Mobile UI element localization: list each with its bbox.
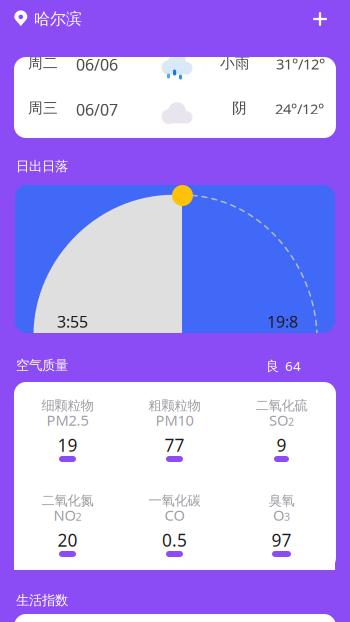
staticText: 19:8: [267, 311, 298, 332]
staticText: NO: [53, 505, 75, 525]
staticText: 生活指数: [16, 592, 68, 608]
staticText: 日出日落: [16, 158, 68, 174]
staticText: 9: [276, 433, 286, 456]
staticText: 二氧化硫: [255, 397, 307, 414]
staticText: 3: [284, 509, 290, 524]
staticText: 空气质量: [16, 357, 68, 373]
button[interactable]: Add city: [301, 2, 339, 36]
staticText: 31°/12°: [276, 54, 325, 73]
staticText: 06/06: [76, 54, 118, 75]
staticText: O: [273, 505, 284, 525]
staticText: 臭氧: [268, 492, 294, 509]
staticText: 2: [75, 509, 81, 524]
staticText: 哈尔滨: [34, 9, 82, 29]
staticText: 小雨: [220, 54, 250, 72]
staticText: 阴: [232, 99, 247, 117]
staticText: 一氧化碳: [148, 492, 200, 509]
staticText: 77: [164, 433, 184, 456]
staticText: 20: [57, 528, 77, 551]
staticText: 0.5: [162, 528, 187, 551]
staticText: 2: [288, 414, 294, 429]
staticText: 二氧化氮: [41, 492, 93, 509]
staticText: 19: [57, 433, 77, 456]
staticText: 3:55: [57, 311, 88, 332]
staticText: 周二: [28, 54, 58, 72]
staticText: 06/07: [76, 99, 118, 120]
staticText: CO: [164, 505, 184, 525]
staticText: PM2.5: [46, 410, 88, 430]
staticText: SO: [269, 410, 288, 430]
staticText: 24°/12°: [275, 99, 324, 118]
staticText: 细颗粒物: [41, 397, 93, 414]
button[interactable]: 哈尔滨: [0, 2, 92, 36]
staticText: 良 64: [266, 357, 301, 375]
staticText: 粗颗粒物: [148, 397, 200, 414]
staticText: PM10: [155, 410, 193, 430]
staticText: 周三: [28, 99, 58, 117]
staticText: 97: [271, 528, 291, 551]
